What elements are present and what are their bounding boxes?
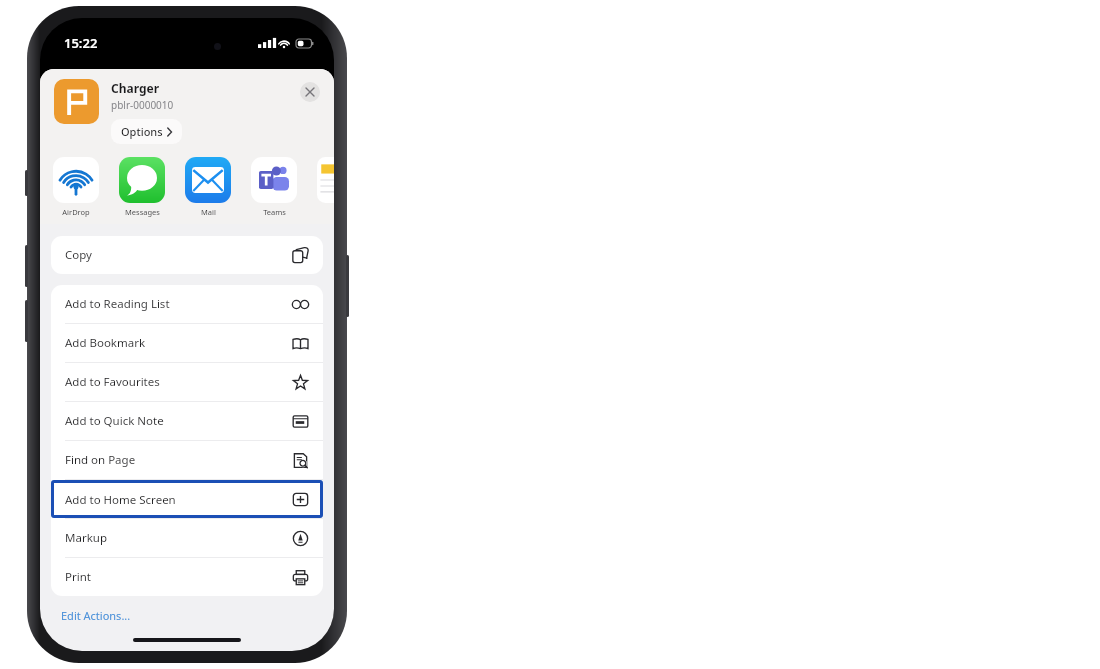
staticText: Mail [201,207,216,217]
button[interactable]: Add to Home Screen [51,480,323,518]
button[interactable]: Options [111,119,182,144]
staticText: Add to Reading List [65,296,292,312]
button[interactable]: Messages [119,157,165,217]
staticText: AirDrop [62,207,90,217]
staticText: pblr-0000010 [111,98,174,112]
button[interactable]: Teams [251,157,297,217]
staticText: Teams [263,207,286,217]
button[interactable]: Edit Actions... [51,606,323,629]
staticText: Find on Page [65,452,292,468]
staticText: Options [121,124,163,139]
staticText: Add to Quick Note [65,413,292,429]
staticText: Add Bookmark [65,335,292,351]
button[interactable]: Add to Favourites [51,363,323,401]
button[interactable]: Find on Page [51,441,323,479]
button[interactable]: More apps [317,157,334,203]
button[interactable]: Add to Reading List [51,285,323,323]
staticText: Copy [65,247,292,263]
staticText: Edit Actions... [61,608,131,623]
button[interactable]: Copy [51,236,323,274]
button[interactable]: Print [51,558,323,596]
button[interactable]: Close [300,82,320,102]
staticText: Add to Favourites [65,374,292,390]
staticText: Add to Home Screen [65,492,292,508]
button[interactable]: Mail [185,157,231,217]
button[interactable]: Add Bookmark [51,324,323,362]
staticText: 15:22 [64,34,98,52]
button[interactable]: AirDrop [53,157,99,217]
button[interactable]: Add to Quick Note [51,402,323,440]
staticText: Messages [125,207,160,217]
staticText: Print [65,569,292,585]
staticText: Markup [65,530,292,546]
button[interactable]: Markup [51,519,323,557]
staticText: Charger [111,80,160,96]
